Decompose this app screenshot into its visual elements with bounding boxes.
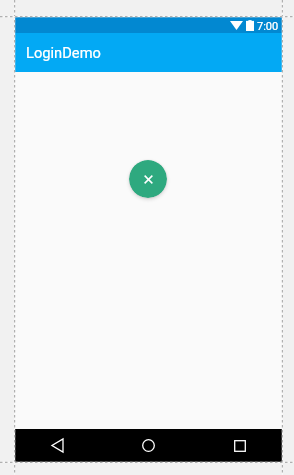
button[interactable]: Home	[113, 429, 183, 462]
button[interactable]: Back	[22, 429, 92, 462]
button[interactable]: Recents	[205, 429, 275, 462]
staticText: 7:00	[257, 20, 279, 33]
button[interactable]: Close	[129, 160, 167, 198]
staticText: LoginDemo	[26, 44, 101, 61]
